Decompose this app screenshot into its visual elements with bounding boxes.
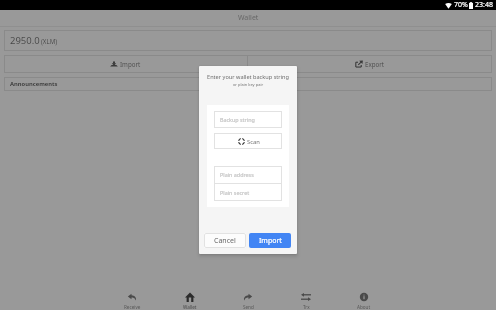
staticText: 23:48	[475, 0, 493, 10]
staticText: Import	[259, 236, 282, 246]
staticText: Backup string	[220, 116, 255, 123]
staticText: Plain secret	[220, 189, 250, 196]
button[interactable]: Scan	[214, 133, 282, 149]
button[interactable]: Wallet	[161, 284, 219, 310]
staticText: 2950.0	[10, 34, 40, 47]
button[interactable]: Receive	[103, 284, 161, 310]
staticText: Cancel	[214, 236, 236, 246]
staticText: Send	[243, 304, 254, 310]
staticText: Trx	[303, 304, 310, 310]
staticText: or plain key pair	[199, 82, 297, 87]
button[interactable]: About	[335, 284, 393, 310]
staticText: About	[357, 304, 371, 310]
staticText: Plain address	[220, 171, 254, 178]
button[interactable]: Plain address	[220, 166, 282, 183]
staticText: (XLM)	[41, 37, 58, 45]
button[interactable]: Cancel	[204, 233, 246, 248]
button[interactable]: Import	[4, 55, 247, 73]
button[interactable]: Trx	[277, 284, 335, 310]
staticText: Wallet	[183, 304, 197, 310]
staticText: Wallet	[238, 13, 259, 23]
button[interactable]: Import	[249, 233, 291, 248]
staticText: Scan	[247, 138, 260, 146]
button[interactable]: Plain secret	[220, 184, 282, 201]
staticText: Receive	[124, 304, 141, 310]
staticText: Export	[365, 60, 385, 68]
button[interactable]: Backup string	[220, 111, 282, 128]
staticText: Import	[120, 60, 141, 68]
staticText: Announcements	[10, 80, 58, 88]
button[interactable]: Export	[248, 55, 492, 73]
staticText: Enter your wallet backup string	[199, 73, 297, 81]
staticText: 70%	[454, 0, 468, 10]
button[interactable]: Send	[219, 284, 277, 310]
